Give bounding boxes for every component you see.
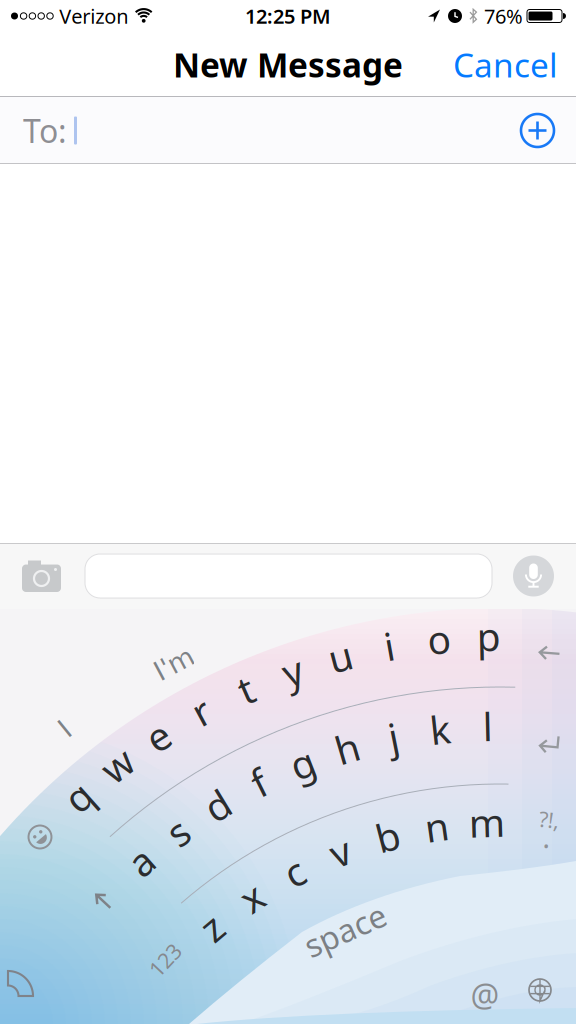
- button[interactable]: f: [252, 757, 265, 808]
- button[interactable]: Numbers: [147, 946, 183, 974]
- staticText: l: [483, 700, 493, 752]
- staticText: ?!,: [537, 805, 558, 833]
- button[interactable]: g: [290, 737, 314, 789]
- button[interactable]: I: [61, 713, 69, 744]
- staticText: New Message: [173, 42, 403, 87]
- button[interactable]: s: [168, 806, 187, 857]
- button[interactable]: m: [469, 796, 505, 848]
- staticText: Cancel: [453, 42, 558, 87]
- button[interactable]: x: [241, 872, 261, 923]
- staticText: p: [477, 610, 501, 662]
- staticText: j: [388, 711, 398, 762]
- staticText: Verizon: [59, 3, 128, 29]
- staticText: d: [205, 779, 229, 831]
- staticText: k: [430, 704, 451, 755]
- button[interactable]: Emoji: [28, 825, 51, 848]
- button[interactable]: n: [425, 801, 449, 852]
- staticText: space: [302, 909, 388, 951]
- button[interactable]: Camera: [0, 559, 61, 593]
- staticText: g: [290, 737, 314, 789]
- staticText: a: [130, 836, 152, 887]
- button[interactable]: b: [376, 811, 400, 862]
- staticText: c: [285, 846, 304, 897]
- button[interactable]: j: [388, 711, 398, 762]
- button[interactable]: h: [335, 722, 359, 773]
- staticText: i: [384, 620, 394, 671]
- button[interactable]: l: [483, 700, 493, 752]
- staticText: I'm: [153, 648, 194, 679]
- button[interactable]: c: [285, 846, 304, 897]
- staticText: n: [425, 801, 449, 852]
- staticText: o: [427, 613, 450, 665]
- button[interactable]: k: [430, 704, 451, 755]
- staticText: To:: [23, 109, 67, 152]
- button[interactable]: u: [328, 631, 352, 682]
- staticText: f: [252, 757, 265, 808]
- button[interactable]: i: [384, 620, 394, 671]
- staticText: h: [335, 722, 359, 773]
- staticText: u: [328, 631, 352, 682]
- staticText: 123: [147, 946, 183, 974]
- button[interactable]: Return: [539, 735, 559, 752]
- button[interactable]: y: [282, 645, 302, 696]
- staticText: e: [147, 711, 169, 762]
- button[interactable]: r: [193, 685, 209, 737]
- staticText: s: [168, 806, 187, 857]
- button[interactable]: v: [330, 826, 350, 877]
- staticText: @: [470, 974, 499, 1016]
- button[interactable]: a: [130, 836, 152, 887]
- staticText: 12:25 PM: [245, 3, 331, 29]
- staticText: w: [102, 739, 132, 790]
- button[interactable]: At sign: [470, 974, 499, 1016]
- button[interactable]: Keyboard position: [8, 971, 34, 997]
- staticText: y: [282, 645, 302, 696]
- staticText: I: [61, 713, 69, 744]
- staticText: •: [545, 835, 551, 857]
- button[interactable]: Voice Message: [492, 555, 576, 596]
- button[interactable]: p: [477, 610, 501, 662]
- staticText: 76%: [484, 3, 523, 29]
- staticText: q: [66, 771, 90, 822]
- button[interactable]: d: [205, 779, 229, 831]
- button[interactable]: Add Contact: [521, 114, 576, 147]
- button[interactable]: Cancel: [453, 42, 576, 87]
- button[interactable]: Shift: [96, 891, 110, 911]
- button[interactable]: q: [66, 771, 90, 822]
- button[interactable]: Delete: [538, 646, 559, 660]
- staticText: m: [469, 796, 505, 848]
- button[interactable]: e: [147, 711, 169, 762]
- button[interactable]: o: [427, 613, 450, 665]
- button[interactable]: I'm: [153, 648, 194, 679]
- button[interactable]: z: [202, 902, 220, 953]
- staticText: z: [202, 902, 220, 953]
- staticText: x: [241, 872, 261, 923]
- staticText: r: [193, 685, 209, 737]
- button[interactable]: Next Keyboard: [529, 979, 551, 1001]
- button[interactable]: Punctuation: [537, 805, 558, 857]
- staticText: b: [376, 811, 400, 862]
- button[interactable]: w: [102, 739, 132, 790]
- button[interactable]: t: [239, 663, 253, 715]
- staticText: t: [239, 663, 253, 715]
- staticText: v: [330, 826, 350, 877]
- button[interactable]: space: [302, 909, 388, 951]
